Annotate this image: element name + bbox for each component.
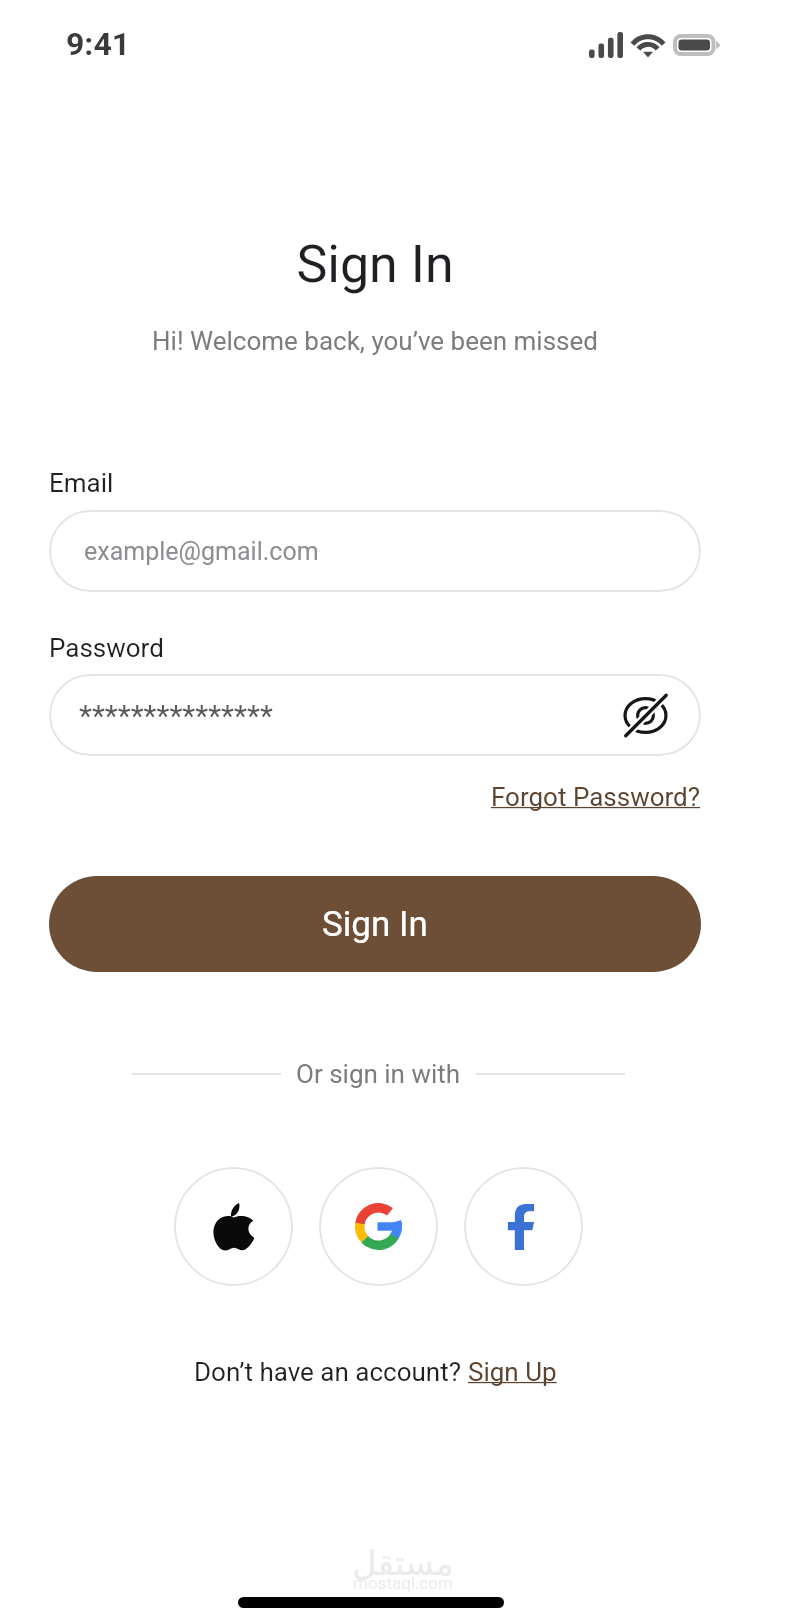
staticText: Sign Up	[468, 1357, 557, 1387]
staticText: مستقل	[352, 1543, 454, 1583]
button[interactable]: Forgot Password?	[491, 782, 701, 812]
staticText: ***************	[79, 698, 273, 733]
staticText: Don’t have an account?	[194, 1357, 468, 1387]
staticText: example@gmail.com	[84, 537, 319, 566]
button[interactable]: Sign in with Google	[319, 1167, 438, 1286]
staticText: Forgot Password?	[491, 782, 701, 812]
staticText: Password	[49, 633, 164, 663]
staticText: 9:41	[66, 25, 131, 63]
button[interactable]: Sign in with Apple	[174, 1167, 293, 1286]
staticText: Or sign in with	[296, 1059, 461, 1089]
staticText: Hi! Welcome back, you’ve been missed	[49, 326, 701, 356]
staticText: Sign In	[49, 234, 701, 295]
button[interactable]: example@gmail.com	[49, 510, 701, 592]
button[interactable]: ***************	[49, 674, 701, 756]
staticText: mostaql.com	[353, 1573, 453, 1593]
staticText: Email	[49, 468, 114, 498]
button[interactable]: Sign in with Facebook	[464, 1167, 583, 1286]
button[interactable]: Show password	[619, 689, 671, 741]
button[interactable]: Sign Up	[468, 1357, 557, 1387]
staticText: Sign In	[322, 904, 428, 945]
button[interactable]: Sign In	[49, 876, 701, 972]
